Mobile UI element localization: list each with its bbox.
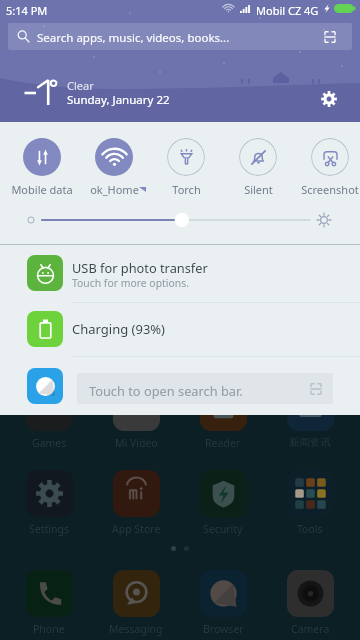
button[interactable]: Screenshot bbox=[294, 138, 360, 197]
button[interactable]: Torch bbox=[150, 138, 222, 197]
staticText: Screenshot bbox=[301, 182, 359, 197]
button[interactable]: 新闻资讯 bbox=[267, 384, 353, 449]
staticText: 新闻资讯 bbox=[289, 436, 331, 449]
staticText: Touch for more options. bbox=[72, 276, 189, 290]
staticText: Charging (93%) bbox=[72, 320, 166, 338]
button[interactable]: Scan code bbox=[323, 30, 337, 44]
staticText: Sunday, January 22 bbox=[67, 92, 170, 108]
button[interactable]: Mi Video bbox=[93, 384, 179, 450]
button[interactable]: Touch to open search bar. bbox=[77, 373, 333, 404]
button[interactable]: App Store bbox=[93, 470, 179, 536]
staticText: Clear bbox=[67, 78, 94, 93]
button[interactable]: Camera bbox=[267, 570, 353, 636]
button[interactable]: Phone bbox=[6, 570, 92, 636]
button[interactable]: Tools bbox=[267, 470, 353, 536]
staticText: USB for photo transfer bbox=[72, 259, 208, 276]
button[interactable]: Settings bbox=[316, 86, 341, 111]
staticText: Torch bbox=[172, 182, 201, 197]
button[interactable]: Messaging bbox=[93, 570, 179, 636]
button[interactable]: ok_Home bbox=[78, 138, 150, 197]
button[interactable]: Mobile data bbox=[6, 138, 78, 197]
staticText: Mobile data bbox=[11, 182, 73, 197]
staticText: Search apps, music, videos, books... bbox=[37, 30, 230, 46]
staticText: Silent bbox=[244, 182, 273, 197]
button[interactable]: Browser bbox=[180, 570, 266, 636]
staticText: Tools bbox=[297, 522, 323, 536]
staticText: Phone bbox=[33, 622, 65, 636]
button[interactable]: Touch to open search bar. bbox=[0, 357, 360, 415]
staticText: Camera bbox=[291, 622, 330, 636]
staticText: Reader bbox=[205, 436, 241, 450]
button[interactable]: Games bbox=[6, 384, 92, 450]
staticText: Mobil CZ 4G bbox=[256, 3, 319, 18]
staticText: Games bbox=[32, 436, 67, 450]
button[interactable]: USB for photo transfer bbox=[0, 245, 360, 302]
staticText: Browser bbox=[203, 622, 244, 636]
button[interactable]: Silent bbox=[222, 138, 294, 197]
button[interactable]: Search apps, music, videos, books... bbox=[8, 23, 352, 50]
staticText: App Store bbox=[112, 522, 161, 536]
button[interactable]: Settings bbox=[6, 470, 92, 536]
staticText: Mi Video bbox=[115, 436, 158, 450]
staticText: Messaging bbox=[109, 622, 163, 636]
button[interactable]: Security bbox=[180, 470, 266, 536]
button[interactable]: Reader bbox=[180, 384, 266, 450]
staticText: Settings bbox=[29, 522, 69, 536]
button[interactable]: Charging (93%) bbox=[0, 303, 360, 356]
button[interactable]: Scan code bbox=[309, 382, 323, 396]
staticText: Touch to open search bar. bbox=[89, 382, 243, 399]
staticText: Security bbox=[203, 522, 243, 536]
staticText: ok_Home bbox=[90, 182, 139, 197]
staticText: 5:14 PM bbox=[6, 3, 48, 18]
